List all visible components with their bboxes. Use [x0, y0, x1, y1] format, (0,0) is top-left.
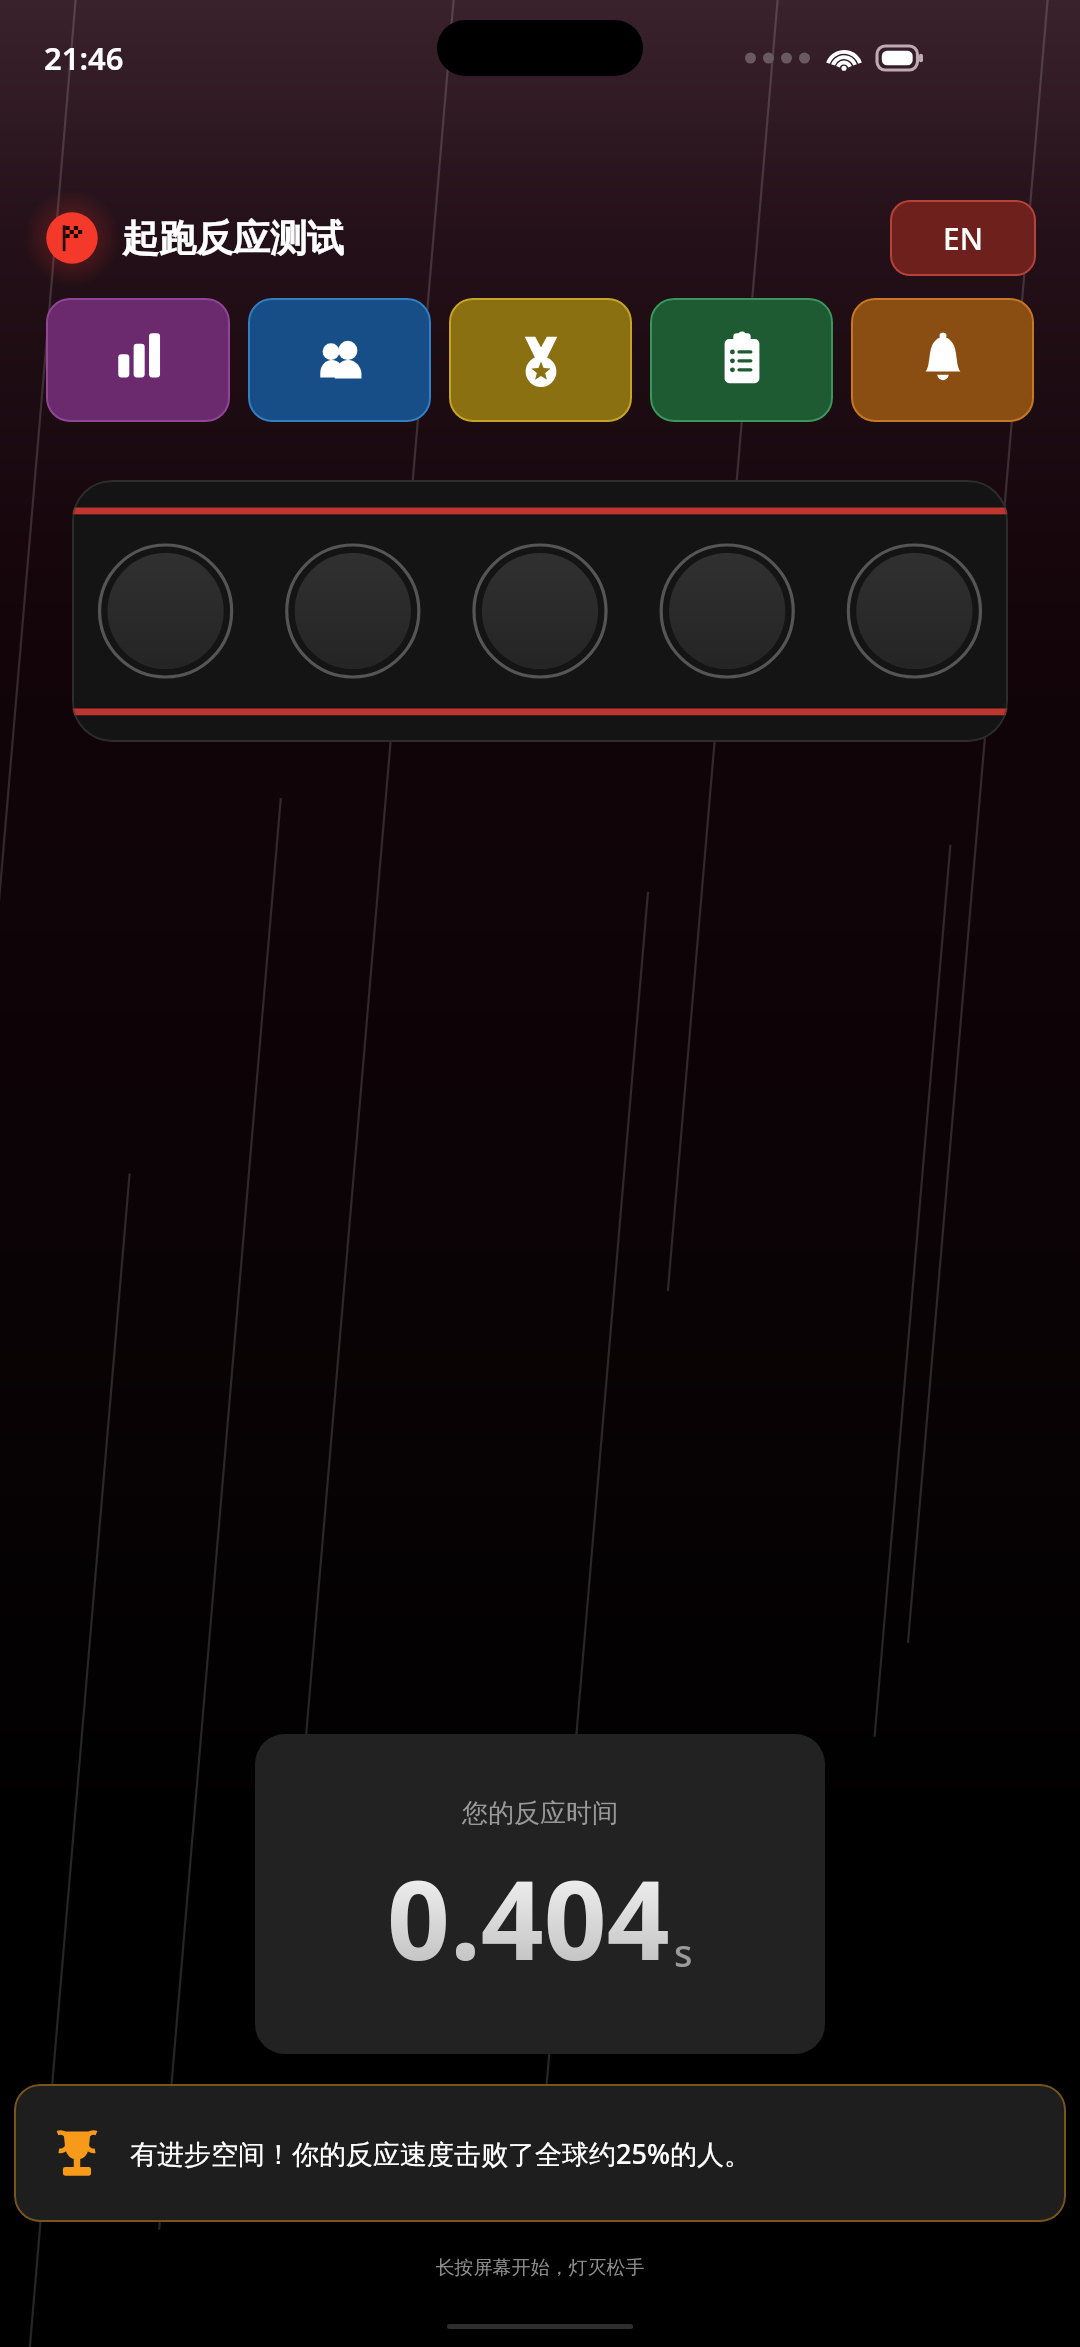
button[interactable]: Records [650, 298, 833, 422]
button[interactable]: Friends [248, 298, 431, 422]
staticText: EN [943, 218, 983, 259]
button[interactable]: Notifications [851, 298, 1034, 422]
button[interactable] [72, 480, 1008, 742]
staticText: 您的反应时间 [462, 1797, 618, 1830]
button[interactable] [44, 210, 100, 266]
staticText: 长按屏幕开始，灯灭松手 [0, 2256, 1080, 2280]
button[interactable]: Statistics [46, 298, 230, 422]
staticText: 有进步空间！你的反应速度击败了全球约25%的人。 [130, 2135, 751, 2172]
button[interactable]: 您的反应时间 [255, 1734, 825, 2054]
staticText: 起跑反应测试 [122, 215, 344, 262]
staticText: 21:46 [44, 37, 124, 79]
staticText: s [674, 1926, 693, 1978]
button[interactable]: Achievements [449, 298, 632, 422]
button[interactable]: 有进步空间！你的反应速度击败了全球约25%的人。 [14, 2084, 1066, 2222]
staticText: 0.404 [387, 1842, 670, 1992]
button[interactable]: EN [890, 200, 1036, 276]
